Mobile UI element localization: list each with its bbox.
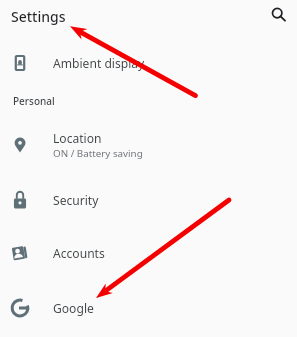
button[interactable]: Security bbox=[0, 173, 297, 227]
button[interactable]: Location bbox=[0, 118, 297, 172]
button[interactable]: Accounts bbox=[0, 226, 297, 280]
staticText: Accounts bbox=[53, 245, 105, 261]
button[interactable]: Search bbox=[264, 0, 294, 30]
button[interactable]: Google bbox=[0, 281, 297, 335]
staticText: Ambient display bbox=[53, 55, 145, 71]
staticText: Settings bbox=[11, 7, 66, 26]
staticText: Location bbox=[53, 130, 102, 146]
staticText: Google bbox=[53, 300, 94, 316]
staticText: ON / Battery saving bbox=[53, 147, 143, 160]
staticText: Personal bbox=[13, 94, 55, 108]
staticText: Security bbox=[53, 192, 99, 208]
button[interactable]: Ambient display bbox=[0, 36, 297, 90]
